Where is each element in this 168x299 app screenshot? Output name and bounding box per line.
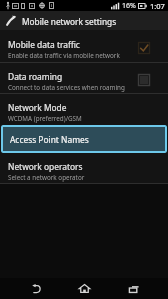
button[interactable]: Recent apps: [111, 278, 156, 299]
staticText: Mobile data traffic: [8, 39, 80, 50]
staticText: 1:07: [150, 1, 165, 11]
button[interactable]: Mobile data traffic: [0, 30, 168, 62]
button[interactable]: Back: [0, 11, 22, 30]
button[interactable]: Network operators: [0, 153, 168, 183]
staticText: WCDMA (preferred)/GSM: [8, 114, 82, 123]
staticText: Select a network operator: [8, 173, 85, 182]
button[interactable]: Access Point Names: [1, 125, 167, 153]
staticText: Network Mode: [8, 102, 67, 113]
button[interactable]: Data roaming: [0, 63, 168, 93]
staticText: Mobile network settings: [22, 16, 117, 27]
staticText: Network operators: [8, 161, 83, 172]
staticText: Data roaming: [8, 71, 63, 82]
button[interactable]: Network Mode: [0, 94, 168, 125]
button[interactable]: Back: [0, 11, 168, 30]
button[interactable]: Back: [13, 278, 58, 299]
staticText: Access Point Names: [10, 134, 89, 145]
staticText: 16%: [122, 1, 136, 11]
staticText: Connect to data services when roaming: [8, 83, 125, 92]
button[interactable]: Home: [62, 278, 107, 299]
staticText: Enable data traffic via mobile network: [8, 51, 120, 60]
